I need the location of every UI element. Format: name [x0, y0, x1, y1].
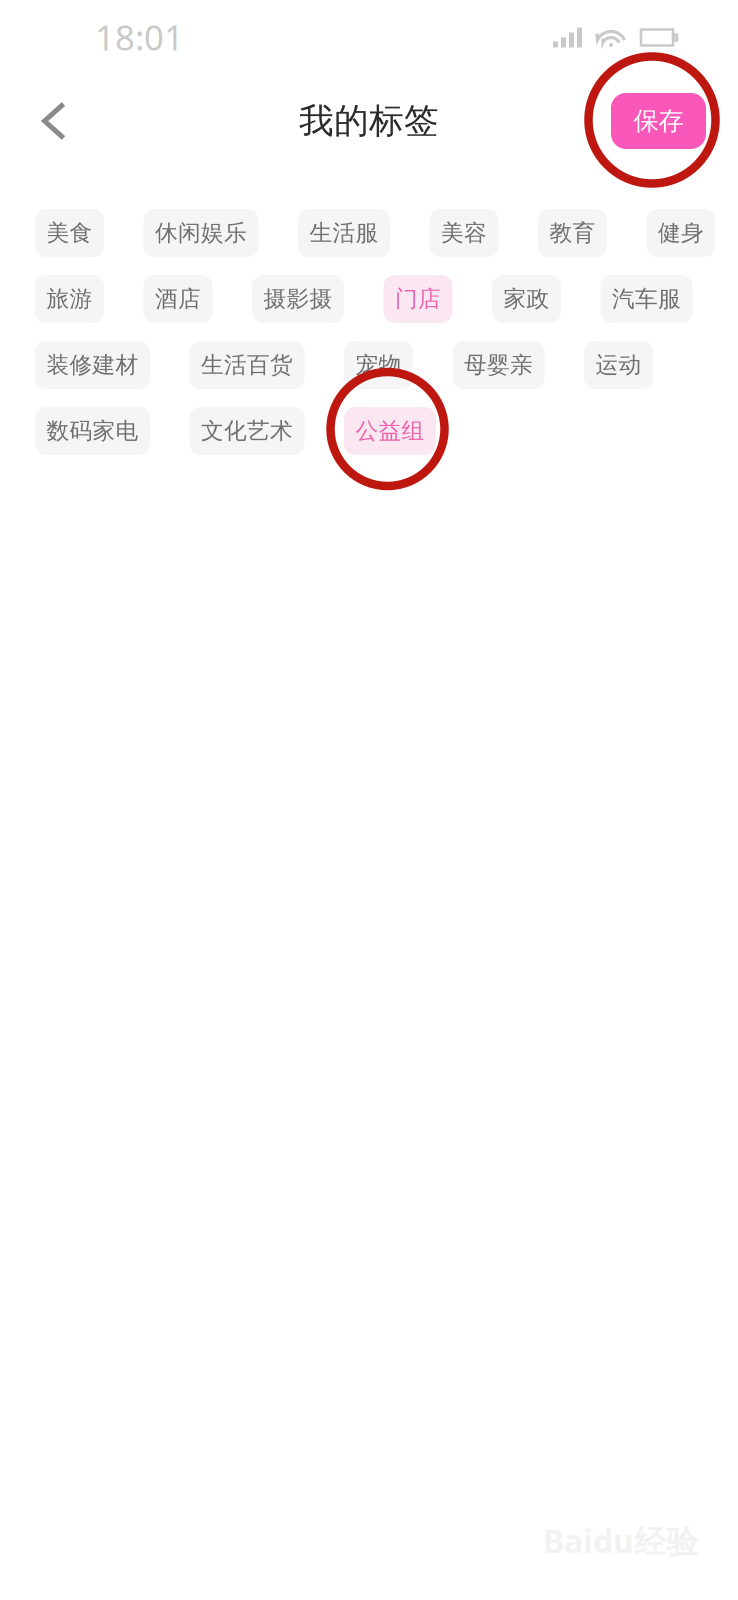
- staticText: 装修建材: [46, 351, 138, 379]
- button[interactable]: 旅游: [35, 275, 104, 323]
- staticText: 美食: [46, 219, 92, 247]
- button[interactable]: 文化艺术: [189, 407, 304, 455]
- staticText: 摄影摄: [263, 285, 332, 313]
- staticText: 生活服: [309, 219, 378, 247]
- button[interactable]: 门店: [383, 275, 452, 323]
- staticText: 运动: [595, 351, 641, 379]
- button[interactable]: 汽车服: [600, 275, 692, 323]
- button[interactable]: 健身: [646, 209, 715, 257]
- button[interactable]: 返回: [41, 100, 67, 141]
- staticText: 教育: [549, 219, 595, 247]
- staticText: 门店: [395, 285, 441, 313]
- button[interactable]: 休闲娱乐: [143, 209, 258, 257]
- button[interactable]: 公益组: [344, 407, 436, 455]
- staticText: 公益组: [355, 417, 424, 445]
- button[interactable]: 酒店: [143, 275, 212, 323]
- staticText: 文化艺术: [201, 417, 293, 445]
- staticText: 酒店: [155, 285, 201, 313]
- staticText: 生活百货: [201, 351, 293, 379]
- staticText: 健身: [658, 219, 704, 247]
- staticText: 休闲娱乐: [155, 219, 247, 247]
- button[interactable]: 美食: [35, 209, 104, 257]
- staticText: 旅游: [46, 285, 92, 313]
- staticText: 母婴亲: [464, 351, 533, 379]
- staticText: 宠物: [355, 351, 401, 379]
- staticText: 美容: [441, 219, 487, 247]
- button[interactable]: 装修建材: [35, 341, 150, 389]
- staticText: 数码家电: [46, 417, 138, 445]
- button[interactable]: 生活百货: [189, 341, 304, 389]
- staticText: 家政: [503, 285, 549, 313]
- button[interactable]: 运动: [584, 341, 653, 389]
- staticText: 保存: [633, 105, 683, 136]
- staticText: 我的标签: [299, 100, 439, 142]
- staticText: 18:01: [95, 14, 184, 60]
- button[interactable]: 教育: [538, 209, 607, 257]
- button[interactable]: 数码家电: [35, 407, 150, 455]
- button[interactable]: 保存: [611, 93, 706, 149]
- button[interactable]: 母婴亲: [452, 341, 544, 389]
- button[interactable]: 宠物: [344, 341, 413, 389]
- button[interactable]: 家政: [492, 275, 561, 323]
- button[interactable]: 美容: [429, 209, 498, 257]
- staticText: Baidu经验: [543, 1519, 698, 1562]
- staticText: 汽车服: [612, 285, 681, 313]
- button[interactable]: 摄影摄: [252, 275, 344, 323]
- button[interactable]: 生活服: [298, 209, 390, 257]
